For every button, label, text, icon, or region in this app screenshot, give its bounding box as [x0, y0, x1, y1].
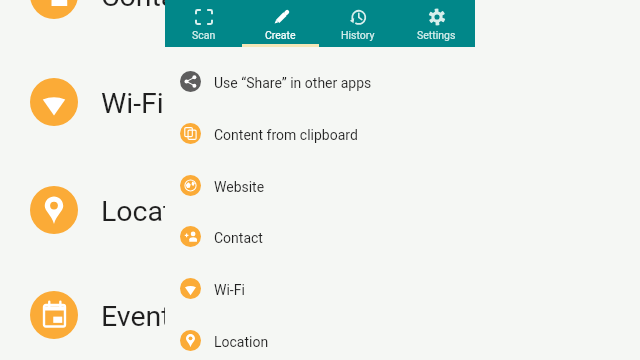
staticText: Location [101, 195, 212, 228]
staticText: Use “Share” in other apps [214, 75, 372, 91]
staticText: Event [101, 300, 171, 333]
button[interactable]: Event [0, 291, 640, 339]
button[interactable]: Settings [397, 0, 475, 47]
staticText: Contact [214, 230, 263, 246]
button[interactable]: Location [165, 314, 475, 360]
button[interactable]: Scan [165, 0, 242, 47]
button[interactable]: Wi-Fi [165, 262, 475, 314]
staticText: Settings [417, 29, 456, 41]
button[interactable]: Create [242, 0, 319, 47]
staticText: Scan [192, 29, 216, 41]
button[interactable]: History [319, 0, 397, 47]
button[interactable]: Contact [165, 210, 475, 262]
staticText: Create [265, 29, 296, 41]
button[interactable]: Contact [0, 0, 640, 19]
staticText: Wi-Fi [101, 87, 164, 120]
button[interactable]: Website [165, 159, 475, 211]
staticText: History [341, 29, 375, 41]
staticText: Wi-Fi [214, 282, 245, 298]
button[interactable]: Location [0, 186, 640, 234]
button[interactable]: Content from clipboard [165, 107, 475, 159]
staticText: Location [214, 334, 269, 350]
staticText: Content from clipboard [214, 127, 358, 143]
button[interactable]: Use “Share” in other apps [165, 55, 475, 107]
button[interactable]: Wi-Fi [0, 78, 640, 126]
staticText: Website [214, 179, 265, 195]
staticText: Contact [101, 0, 201, 13]
